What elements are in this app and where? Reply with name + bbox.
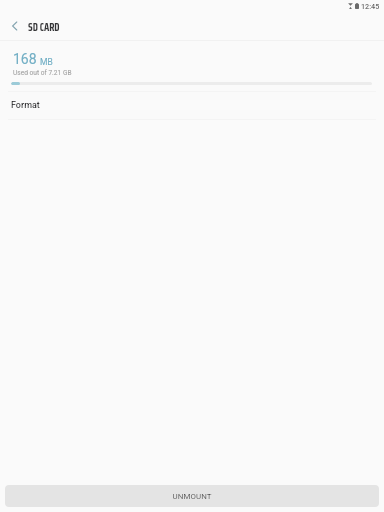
button[interactable]: Navigate up — [1, 15, 27, 37]
button[interactable]: Format — [0, 92, 384, 119]
staticText: SD CARD — [28, 19, 60, 36]
staticText: 168 — [13, 51, 37, 67]
staticText: Used out of 7.21 GB — [13, 69, 72, 77]
staticText: 12:45 — [361, 2, 380, 10]
button[interactable]: UNMOUNT — [5, 485, 379, 507]
staticText: Format — [11, 100, 40, 111]
staticText: UNMOUNT — [172, 492, 212, 501]
staticText: MB — [40, 57, 53, 67]
